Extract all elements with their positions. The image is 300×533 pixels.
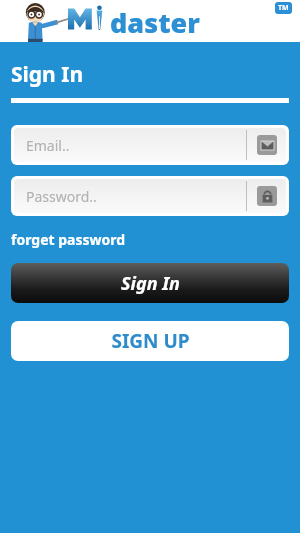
staticText: Password.. (26, 187, 246, 206)
button[interactable]: Sign In (11, 263, 289, 303)
staticText: SIGN UP (111, 328, 190, 354)
staticText: TM (278, 3, 289, 13)
button[interactable]: Password (11, 176, 289, 216)
button[interactable]: SIGN UP (11, 321, 289, 361)
button[interactable]: Email (11, 125, 289, 165)
staticText: daster (110, 4, 200, 38)
button[interactable]: forget password (11, 228, 126, 251)
staticText: forget password (11, 230, 126, 249)
staticText: Sign In (11, 60, 84, 89)
staticText: Email.. (26, 136, 246, 155)
staticText: Sign In (121, 271, 180, 296)
